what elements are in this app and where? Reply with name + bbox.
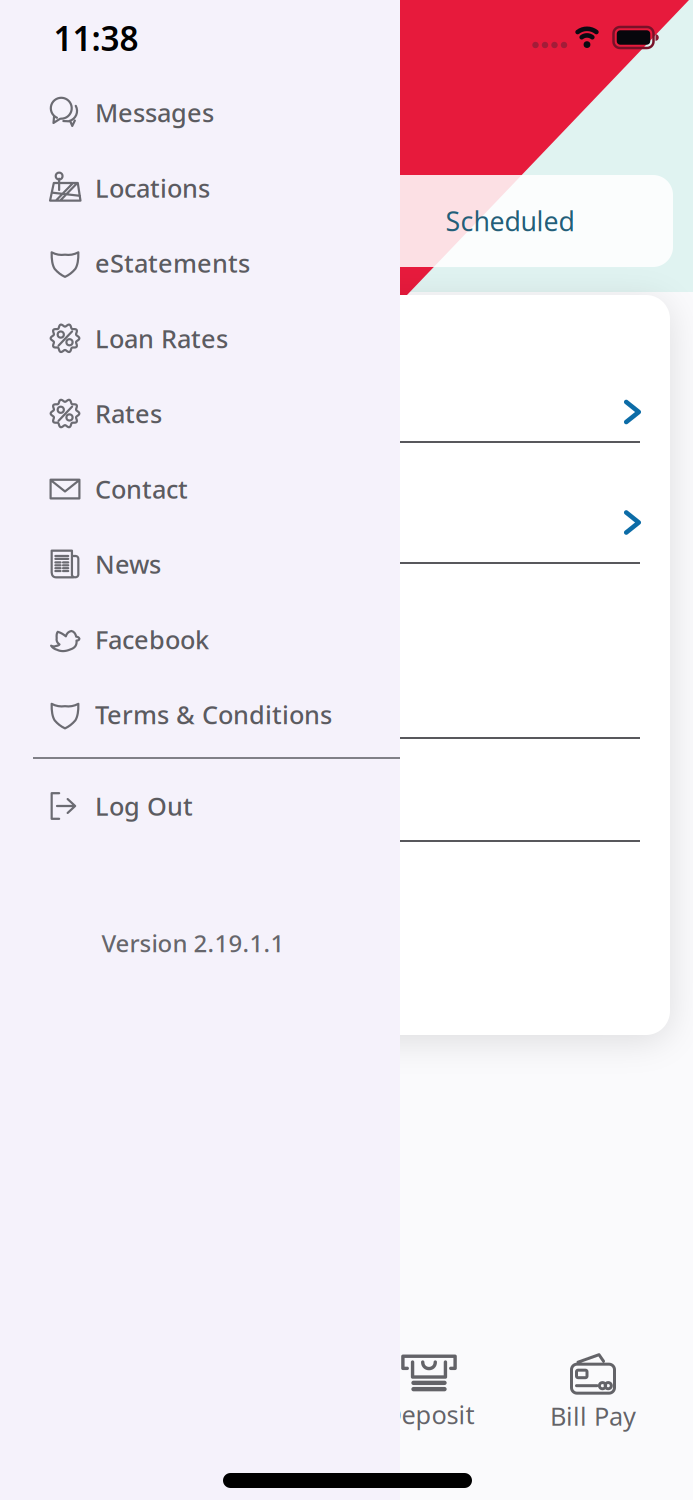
staticText: Bill Pay	[550, 1399, 636, 1433]
button[interactable]: News	[0, 531, 400, 597]
button[interactable]: Select account	[612, 392, 652, 432]
button[interactable]: Terms & Conditions	[0, 681, 400, 747]
staticText: 11:38	[53, 16, 138, 60]
button[interactable]: eStatements	[0, 230, 400, 296]
button[interactable]: Select account	[612, 502, 652, 542]
staticText: Locations	[95, 171, 210, 205]
staticText: Loan Rates	[95, 321, 228, 355]
staticText: Messages	[95, 96, 214, 129]
button[interactable]: Facebook	[0, 606, 400, 672]
button[interactable]: Rates	[0, 380, 400, 446]
button[interactable]: Loan Rates	[0, 305, 400, 371]
staticText: Log Out	[95, 789, 193, 823]
button[interactable]: Deposit	[349, 1347, 509, 1437]
staticText: News	[95, 547, 161, 581]
staticText: Deposit	[383, 1397, 474, 1431]
button[interactable]: Messages	[0, 79, 400, 145]
staticText: Scheduled	[445, 203, 574, 239]
button[interactable]: Contact	[0, 456, 400, 522]
staticText: Contact	[95, 472, 188, 506]
button[interactable]: Log Out	[0, 773, 400, 839]
staticText: Rates	[95, 397, 162, 430]
button[interactable]: Locations	[0, 155, 400, 221]
staticText: eStatements	[95, 246, 250, 280]
staticText: Version 2.19.1.1	[101, 927, 284, 959]
staticText: Terms & Conditions	[95, 698, 332, 731]
button[interactable]: Bill Pay	[513, 1347, 673, 1437]
staticText: Facebook	[95, 622, 209, 656]
button[interactable]: Scheduled	[347, 175, 673, 267]
